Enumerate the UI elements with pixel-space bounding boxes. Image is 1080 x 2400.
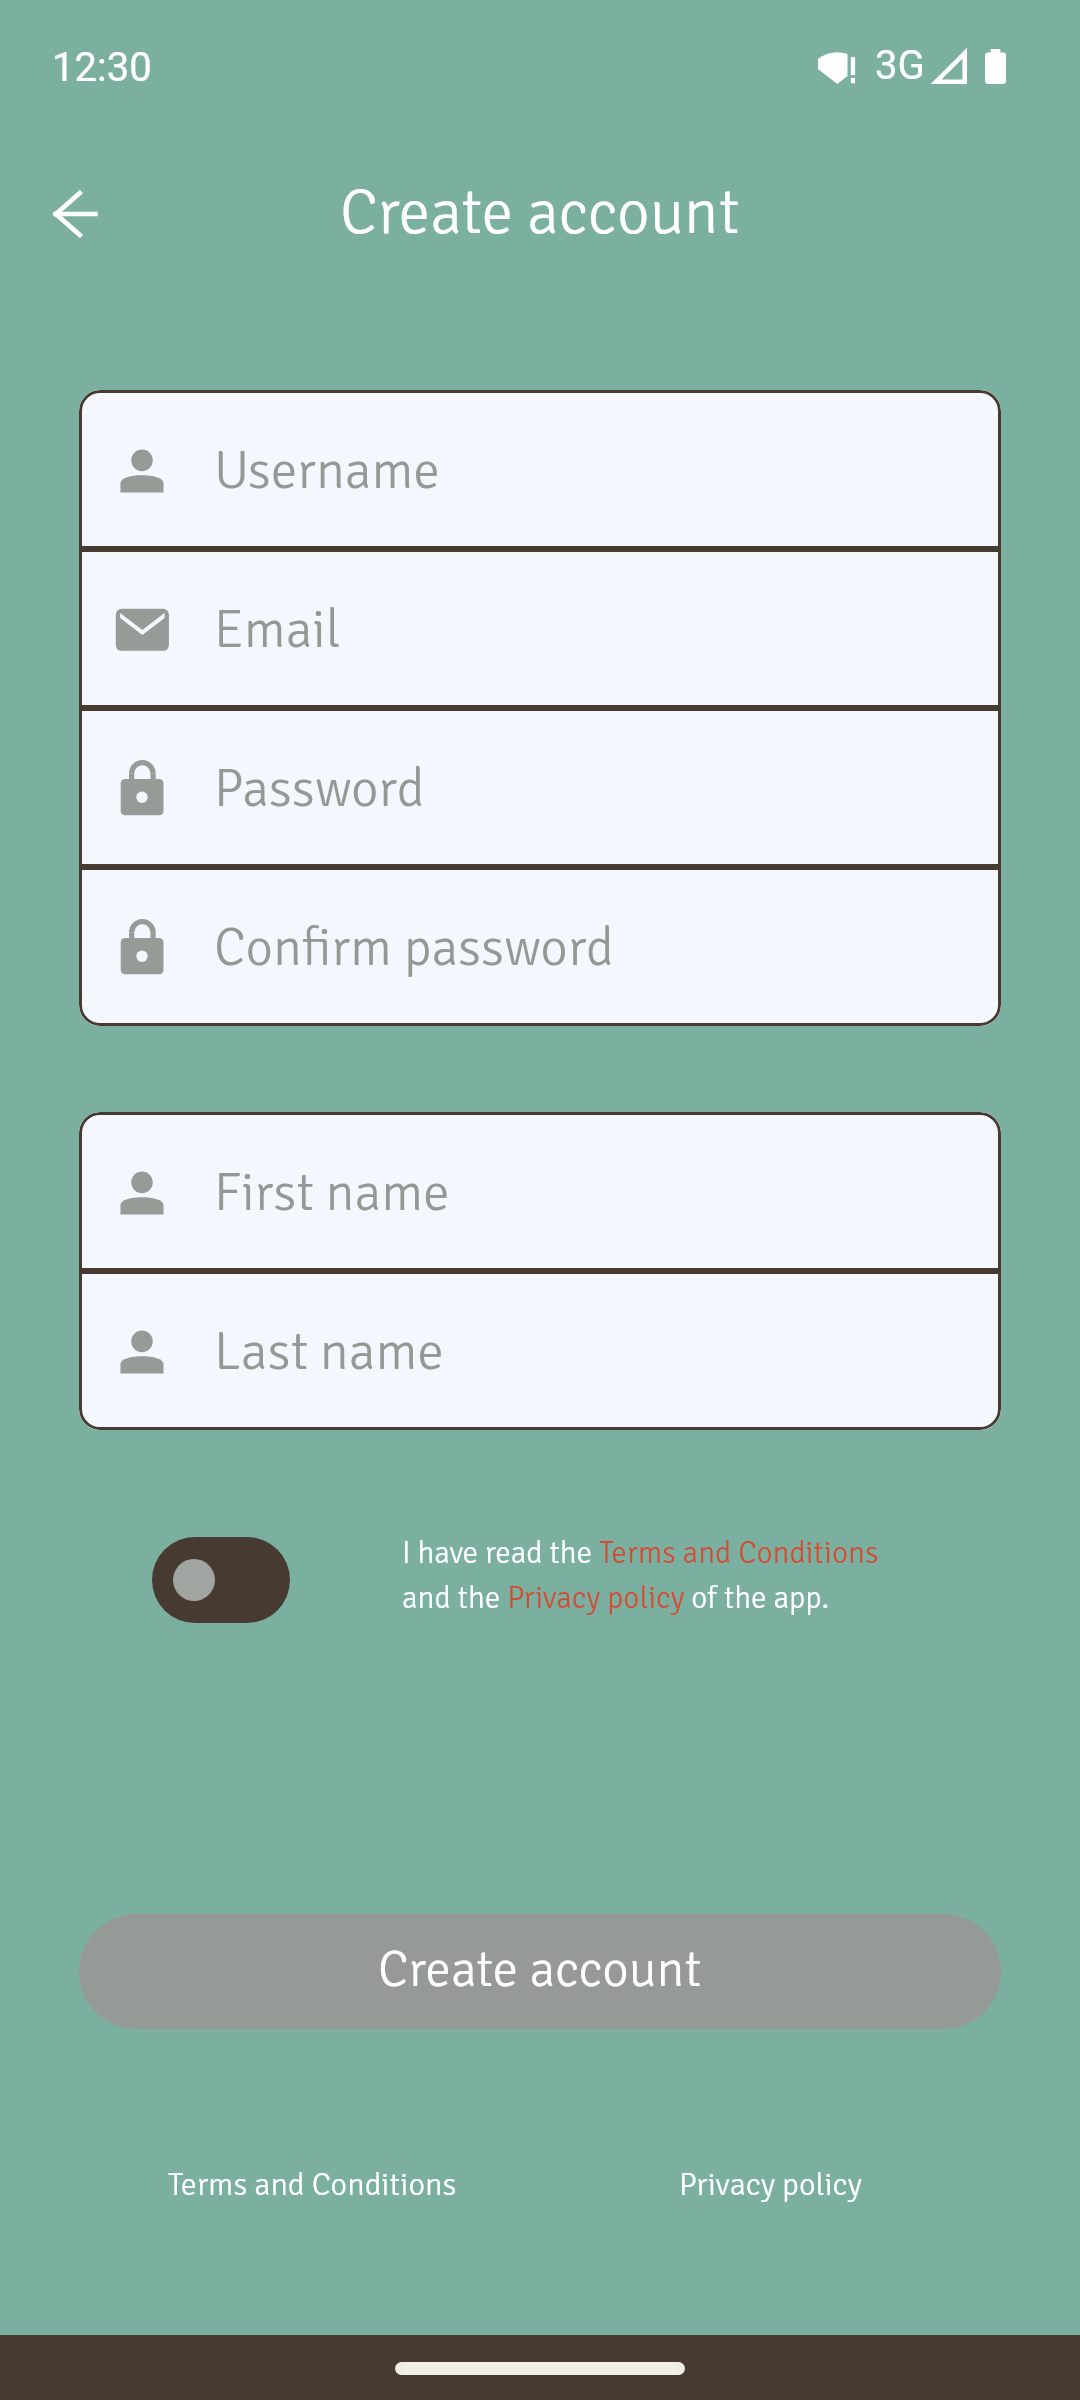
staticText: 3G: [875, 42, 925, 89]
button[interactable]: Username: [79, 393, 1001, 546]
staticText: Create account: [340, 174, 740, 252]
button[interactable]: Confirm password: [79, 870, 1001, 1023]
button[interactable]: Create account: [79, 1914, 1001, 2029]
staticText: Terms and Conditions: [168, 2165, 457, 2204]
staticText: I have read the Terms and Conditions and…: [402, 1534, 879, 1617]
staticText: First name: [214, 1160, 450, 1225]
button[interactable]: Accept terms and conditions: [152, 1537, 290, 1623]
staticText: Privacy policy: [679, 2165, 862, 2204]
staticText: Last name: [214, 1319, 444, 1384]
staticText: 12:30: [52, 44, 152, 91]
button[interactable]: Password: [79, 711, 1001, 864]
staticText: Confirm password: [214, 915, 614, 980]
button[interactable]: Last name: [79, 1274, 1001, 1427]
staticText: Email: [214, 597, 341, 662]
staticText: Password: [214, 756, 425, 821]
button[interactable]: Privacy policy: [679, 2153, 862, 2216]
staticText: Username: [214, 438, 440, 503]
staticText: Create account: [378, 1938, 702, 2001]
button[interactable]: Email: [79, 552, 1001, 705]
button[interactable]: Back: [20, 154, 132, 266]
button[interactable]: Terms and Conditions: [168, 2153, 457, 2216]
button[interactable]: First name: [79, 1115, 1001, 1268]
